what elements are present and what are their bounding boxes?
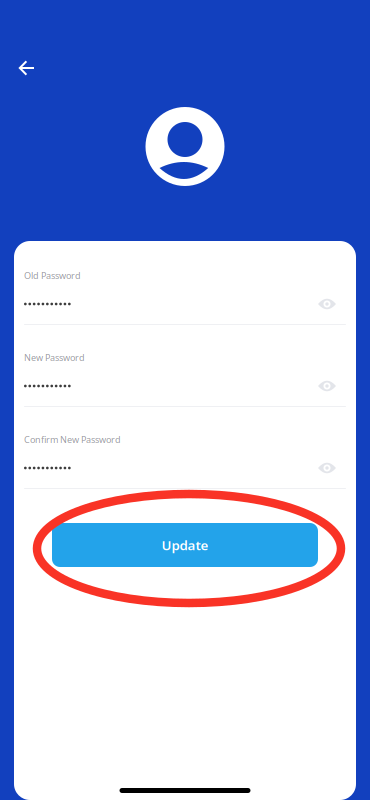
- button[interactable]: Back: [10, 51, 44, 85]
- staticText: New Password: [24, 351, 85, 364]
- button[interactable]: Show New Password: [314, 375, 346, 397]
- button[interactable]: Update: [52, 523, 318, 567]
- staticText: Update: [161, 536, 208, 554]
- button[interactable]: Show Old Password: [314, 293, 346, 315]
- staticText: Confirm New Password: [24, 433, 121, 446]
- staticText: Old Password: [24, 269, 81, 282]
- button[interactable]: Show Confirm New Password: [314, 457, 346, 479]
